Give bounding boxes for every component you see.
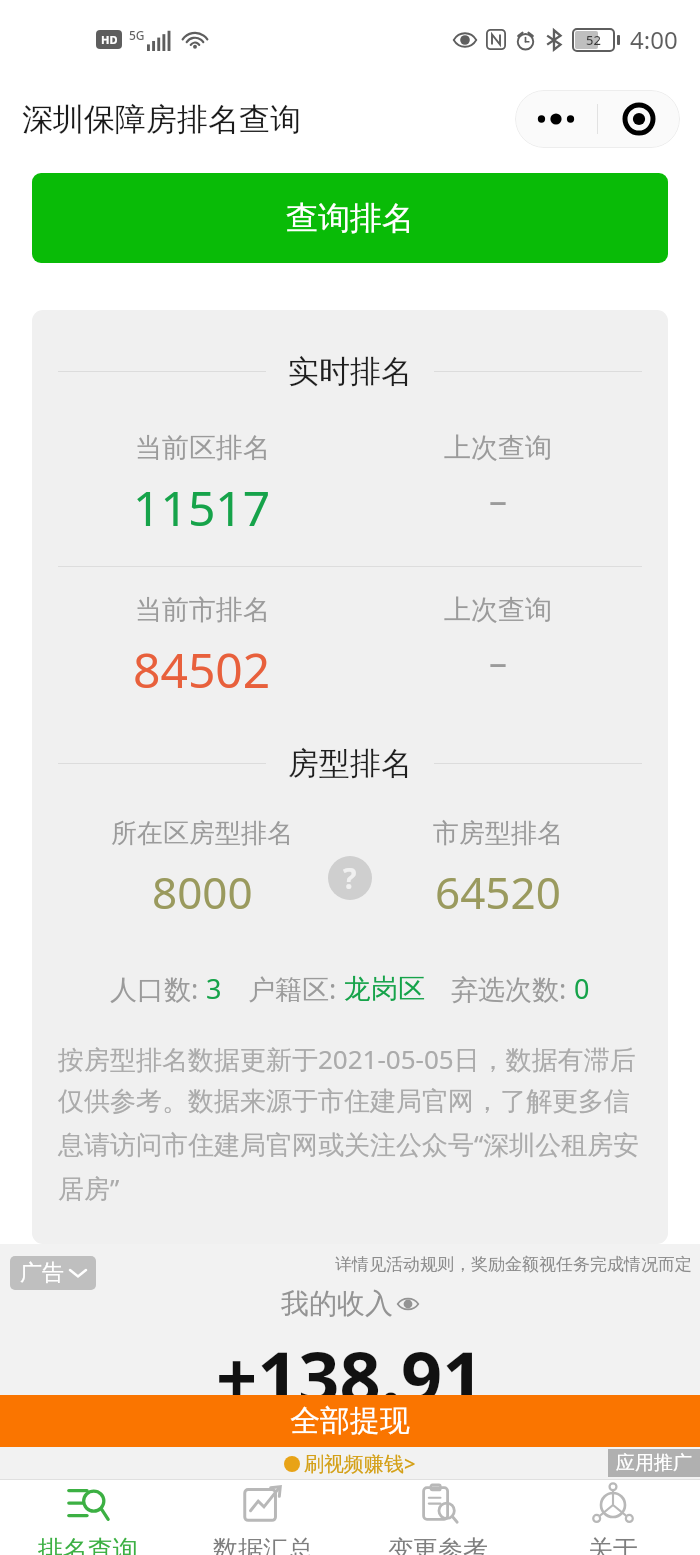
button[interactable]: 广告 xyxy=(20,1259,86,1287)
staticText: 按房型排名数据更新于2021-05-05日，数据有滞后仅供参考。数据来源于市住建… xyxy=(58,1041,642,1206)
staticText: 84502 xyxy=(133,637,271,702)
button[interactable]: Close mini program xyxy=(598,90,680,148)
staticText: 5G xyxy=(129,27,145,43)
staticText: ? xyxy=(343,859,357,897)
staticText: 关于 xyxy=(588,1534,638,1555)
staticText: 全部提现 xyxy=(290,1402,410,1440)
staticText: 64520 xyxy=(435,862,561,922)
staticText: 8000 xyxy=(152,862,253,922)
button[interactable]: 查询排名 xyxy=(32,173,668,263)
staticText: 应用推广 xyxy=(616,1451,692,1475)
staticText: 数据汇总 xyxy=(213,1534,313,1555)
button[interactable]: 全部提现 xyxy=(0,1395,700,1447)
staticText: 实时排名 xyxy=(288,352,412,391)
staticText: 详情见活动规则，奖励金额视任务完成情况而定 xyxy=(335,1254,692,1275)
staticText: 查询排名 xyxy=(286,198,414,238)
staticText: 3 xyxy=(206,970,222,1007)
staticText: 变更参考 xyxy=(388,1534,488,1555)
staticText: 11517 xyxy=(133,475,271,540)
staticText: 户籍区: xyxy=(248,970,344,1007)
button[interactable]: 广告 xyxy=(0,1244,700,1479)
staticText: – xyxy=(489,475,507,524)
staticText: +138.91 xyxy=(216,1327,484,1425)
staticText: 人口数: xyxy=(110,970,206,1007)
button[interactable]: 数据汇总 xyxy=(175,1480,350,1555)
staticText: 上次查询 xyxy=(444,593,552,627)
button[interactable]: 变更参考 xyxy=(350,1480,525,1555)
staticText: 龙岗区 xyxy=(344,972,425,1006)
button[interactable]: More options xyxy=(515,90,597,148)
staticText: 深圳保障房排名查询 xyxy=(22,100,301,139)
staticText: HD xyxy=(101,32,118,47)
staticText: 上次查询 xyxy=(444,431,552,465)
staticText: 0 xyxy=(574,970,590,1007)
staticText: 当前市排名 xyxy=(135,593,270,627)
staticText: 房型排名 xyxy=(288,744,412,783)
staticText: 所在区房型排名 xyxy=(111,817,293,850)
staticText: 当前区排名 xyxy=(135,431,270,465)
staticText: 我的收入 xyxy=(281,1286,393,1321)
button[interactable]: Help xyxy=(328,856,372,900)
staticText: 排名查询 xyxy=(38,1534,138,1555)
button[interactable]: 排名查询 xyxy=(0,1480,175,1555)
staticText: 4:00 xyxy=(630,23,678,56)
staticText: 广告 xyxy=(20,1259,64,1287)
staticText: 52 xyxy=(586,31,601,49)
staticText: – xyxy=(489,637,507,686)
staticText: 市房型排名 xyxy=(433,817,563,850)
button[interactable]: 关于 xyxy=(525,1480,700,1555)
staticText: 弃选次数: xyxy=(451,970,574,1007)
staticText: 刷视频赚钱> xyxy=(304,1450,416,1477)
